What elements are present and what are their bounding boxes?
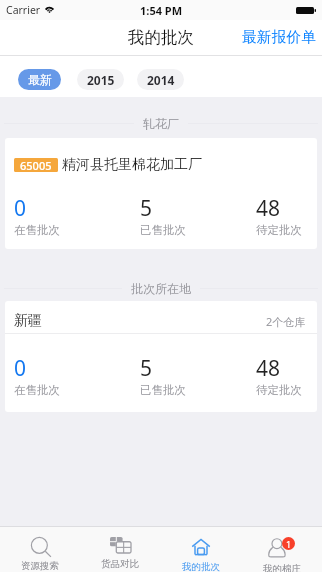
button[interactable]: 我的批次 (160, 527, 241, 572)
button[interactable]: 1 (241, 527, 322, 572)
staticText: 最新 (28, 72, 52, 87)
staticText: 我的批次 (128, 27, 194, 48)
button[interactable]: 最新报价单 (233, 22, 322, 53)
staticText: 在售批次 (14, 383, 60, 397)
button[interactable]: 2014 (137, 69, 184, 90)
button[interactable]: 65005 (5, 138, 317, 249)
staticText: 已售批次 (140, 223, 186, 237)
staticText: 我的批次 (182, 561, 220, 572)
staticText: 2015 (87, 72, 115, 88)
staticText: 轧花厂 (143, 116, 179, 131)
staticText: 48 (256, 354, 281, 383)
button[interactable]: 最新 (18, 69, 61, 90)
staticText: 65005 (20, 158, 52, 172)
staticText: 精河县托里棉花加工厂 (62, 156, 202, 174)
staticText: 0 (14, 194, 27, 223)
staticText: 5 (140, 354, 153, 383)
button[interactable]: 新疆 (5, 301, 317, 412)
button[interactable]: 2015 (77, 69, 124, 90)
staticText: 0 (14, 354, 27, 383)
staticText: 待定批次 (256, 223, 302, 237)
staticText: 2014 (147, 72, 175, 88)
staticText: 已售批次 (140, 383, 186, 397)
staticText: 货品对比 (101, 558, 139, 570)
staticText: 5 (140, 194, 153, 223)
staticText: 最新报价单 (242, 28, 316, 47)
staticText: 48 (256, 194, 281, 223)
staticText: 2个仓库 (266, 314, 306, 329)
staticText: 待定批次 (256, 383, 302, 397)
button[interactable]: 资源搜索 (0, 527, 80, 572)
button[interactable]: 货品对比 (80, 527, 160, 572)
staticText: 新疆 (14, 312, 42, 330)
staticText: 批次所在地 (131, 281, 191, 296)
staticText: 1 (286, 538, 292, 550)
staticText: Carrier (6, 3, 41, 17)
staticText: 我的棉庄 (263, 563, 301, 572)
staticText: 资源搜索 (21, 560, 59, 572)
staticText: 1:54 PM (140, 3, 183, 18)
staticText: 在售批次 (14, 223, 60, 237)
